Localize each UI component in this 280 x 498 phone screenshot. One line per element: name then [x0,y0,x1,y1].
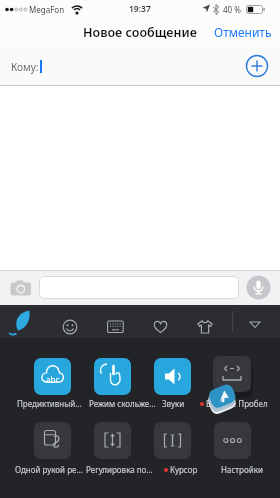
staticText: Курсор [170,464,198,475]
button[interactable] [249,321,261,330]
staticText: Регулировка по… [86,464,153,475]
button[interactable] [34,422,71,459]
button[interactable] [213,356,251,392]
button[interactable]: Кому: [0,46,280,86]
button[interactable] [62,319,78,335]
button[interactable] [94,422,131,459]
staticText: Кому: [11,60,39,74]
button[interactable] [154,358,191,395]
button[interactable] [246,275,271,300]
button[interactable] [153,320,168,334]
staticText: Режим скольже… [89,398,156,409]
staticText: Больше Пробел [206,398,268,409]
staticText: Новое сообщение [83,24,197,41]
staticText: 40 % [223,4,241,15]
button[interactable] [10,280,32,296]
staticText: Звуки [162,398,185,409]
staticText: Одной рукой ре… [15,464,83,475]
staticText: Настройки [221,464,263,475]
staticText: abc [46,374,60,385]
button[interactable]: Отменить [214,24,272,40]
staticText: 19:37 [129,3,151,15]
button[interactable] [245,54,269,78]
button[interactable]: abc [34,358,71,395]
button[interactable] [39,276,239,299]
staticText: Предиктивный… [17,398,82,409]
button[interactable] [154,422,191,459]
button[interactable] [12,309,32,335]
button[interactable] [94,358,131,395]
staticText: MegaFon [29,4,65,15]
button[interactable] [214,422,251,459]
button[interactable] [107,319,124,335]
button[interactable] [197,320,213,334]
